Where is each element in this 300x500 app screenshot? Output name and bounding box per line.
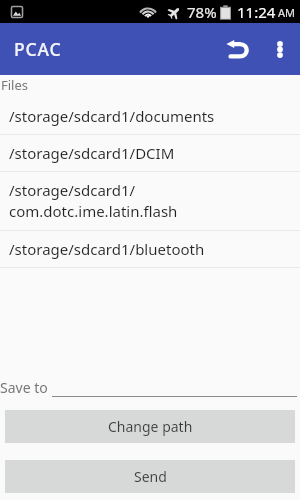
- staticText: 78%: [187, 2, 217, 22]
- staticText: 11:24: [237, 2, 276, 22]
- staticText: Change path: [108, 417, 193, 436]
- staticText: /storage/sdcard1/DCIM: [9, 143, 175, 163]
- staticText: /storage/sdcard1/documents: [9, 106, 215, 126]
- button[interactable]: /storage/sdcard1/DCIM: [0, 135, 300, 171]
- button[interactable]: More options: [260, 23, 300, 75]
- staticText: /storage/sdcard1/bluetooth: [9, 239, 205, 259]
- button[interactable]: Undo: [214, 23, 260, 75]
- staticText: Send: [134, 467, 167, 486]
- button[interactable]: Change path: [5, 410, 295, 443]
- staticText: Save to: [0, 378, 48, 397]
- staticText: PCAC: [14, 37, 62, 61]
- button[interactable]: /storage/sdcard1/bluetooth: [0, 231, 300, 267]
- staticText: AM: [278, 5, 296, 20]
- button[interactable]: Send: [5, 460, 295, 493]
- button[interactable]: /storage/sdcard1/ com.dotc.ime.latin.fla…: [0, 172, 300, 230]
- button[interactable]: /storage/sdcard1/documents: [0, 98, 300, 134]
- staticText: Files: [1, 76, 29, 94]
- staticText: /storage/sdcard1/ com.dotc.ime.latin.fla…: [9, 180, 178, 222]
